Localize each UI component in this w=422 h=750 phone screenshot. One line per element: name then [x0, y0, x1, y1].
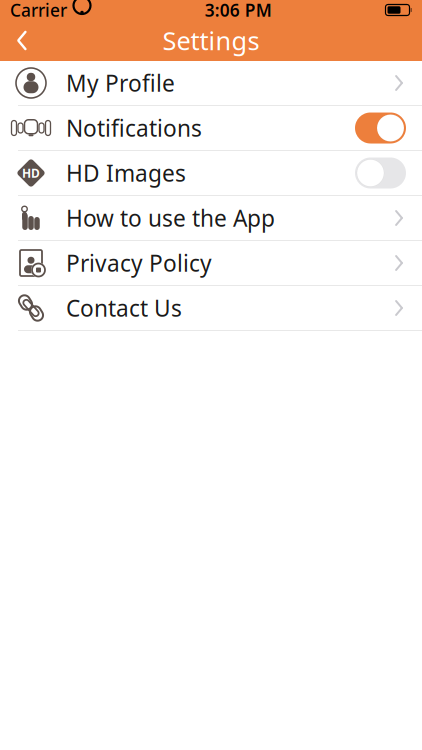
staticText: HD	[22, 165, 40, 181]
staticText: Privacy Policy	[66, 248, 212, 278]
staticText: Notifications	[66, 113, 202, 143]
staticText: Contact Us	[66, 293, 182, 323]
staticText: How to use the App	[66, 203, 275, 233]
staticText: HD Images	[66, 158, 186, 188]
staticText: Carrier	[10, 0, 67, 21]
button[interactable]: Notifications	[0, 106, 422, 151]
button[interactable]: Contact Us	[0, 286, 422, 331]
button[interactable]: How to use the App	[0, 196, 422, 241]
button[interactable]: Back	[0, 18, 44, 62]
button[interactable]: HD	[0, 151, 422, 196]
button[interactable]: My Profile	[0, 61, 422, 106]
staticText: Settings	[162, 24, 259, 57]
staticText: My Profile	[66, 68, 175, 98]
staticText: 3:06 PM	[205, 0, 272, 21]
button[interactable]: Privacy Policy	[0, 241, 422, 286]
